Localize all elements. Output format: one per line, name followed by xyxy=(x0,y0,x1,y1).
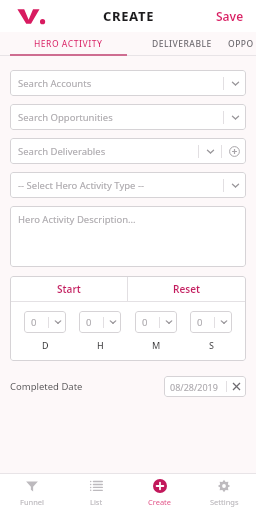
button[interactable]: Start xyxy=(10,276,127,301)
button[interactable]: Clear date xyxy=(227,376,246,397)
button[interactable]: Funnel xyxy=(0,474,64,512)
staticText: 0 xyxy=(197,316,214,329)
button[interactable]: 0 xyxy=(190,311,232,333)
button[interactable]: List xyxy=(64,474,128,512)
button[interactable]: DELIVERABLE xyxy=(136,32,228,56)
button[interactable]: Hero Activity Description... xyxy=(10,206,246,267)
staticText: HERO ACTIVITY xyxy=(34,38,103,50)
button[interactable]: Add deliverable xyxy=(222,138,246,164)
staticText: OPPORTUNITY xyxy=(228,38,256,50)
staticText: Reset xyxy=(173,282,201,296)
staticText: Funnel xyxy=(20,497,44,507)
staticText: Settings xyxy=(210,497,239,507)
button[interactable]: Search Accounts xyxy=(10,70,246,96)
staticText: Create xyxy=(148,497,172,507)
button[interactable]: Reset xyxy=(128,276,246,301)
staticText: 0 xyxy=(31,316,48,329)
staticText: 08/28/2019 xyxy=(170,381,226,393)
staticText: Start xyxy=(57,282,81,296)
staticText: CREATE xyxy=(103,7,154,25)
staticText: M xyxy=(152,339,161,351)
button[interactable]: Search Opportunities xyxy=(10,104,246,130)
staticText: Search Deliverables xyxy=(18,145,198,158)
button[interactable]: 0 xyxy=(24,311,66,333)
button[interactable]: Settings xyxy=(192,474,256,512)
staticText: Completed Date xyxy=(10,380,83,393)
button[interactable]: Create xyxy=(128,474,192,512)
button[interactable]: Save xyxy=(204,3,256,29)
staticText: -- Select Hero Activity Type -- xyxy=(18,179,223,192)
staticText: Hero Activity Description... xyxy=(18,213,136,226)
staticText: 0 xyxy=(142,316,159,329)
button[interactable]: 08/28/2019 xyxy=(164,376,246,397)
staticText: DELIVERABLE xyxy=(152,38,212,50)
button[interactable]: OPPORTUNITY xyxy=(228,32,256,56)
staticText: H xyxy=(97,339,104,351)
button[interactable]: -- Select Hero Activity Type -- xyxy=(10,172,246,198)
button[interactable]: 0 xyxy=(135,311,177,333)
button[interactable]: Search Deliverables xyxy=(10,138,246,164)
staticText: Save xyxy=(216,8,244,24)
button[interactable]: HERO ACTIVITY xyxy=(0,32,136,56)
button[interactable]: Home xyxy=(14,3,48,29)
staticText: S xyxy=(209,339,214,351)
staticText: Search Opportunities xyxy=(18,111,223,124)
staticText: List xyxy=(90,497,103,507)
button[interactable]: 0 xyxy=(79,311,121,333)
staticText: Search Accounts xyxy=(18,77,223,90)
staticText: 0 xyxy=(86,316,103,329)
staticText: D xyxy=(42,339,49,351)
